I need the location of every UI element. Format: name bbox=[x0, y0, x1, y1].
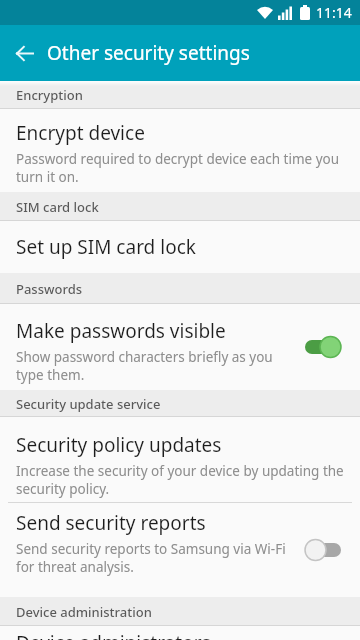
staticText: Set up SIM card lock bbox=[16, 234, 196, 260]
staticText: Make passwords visible bbox=[16, 318, 226, 344]
staticText: Send security reports bbox=[16, 510, 206, 536]
staticText: Security update service bbox=[16, 395, 161, 413]
staticText: Device administrators bbox=[16, 630, 211, 640]
staticText: Passwords bbox=[16, 280, 83, 298]
button[interactable] bbox=[302, 537, 344, 563]
staticText: Encryption bbox=[16, 86, 83, 104]
staticText: Security policy updates bbox=[16, 432, 222, 458]
button[interactable]: Device administrators bbox=[0, 626, 360, 640]
button[interactable] bbox=[302, 334, 344, 360]
button[interactable]: Make passwords visible bbox=[0, 304, 360, 390]
staticText: Password required to decrypt device each… bbox=[16, 150, 340, 186]
button[interactable] bbox=[8, 37, 40, 69]
staticText: SIM card lock bbox=[16, 198, 99, 216]
staticText: Increase the security of your device by … bbox=[16, 462, 344, 498]
staticText: Send security reports to Samsung via Wi-… bbox=[16, 540, 286, 576]
button[interactable]: Security policy updates bbox=[0, 417, 360, 502]
button[interactable]: Send security reports bbox=[0, 503, 360, 597]
staticText: Device administration bbox=[16, 603, 152, 621]
staticText: Show password characters briefly as you … bbox=[16, 348, 273, 384]
staticText: Encrypt device bbox=[16, 120, 145, 146]
staticText: Other security settings bbox=[47, 40, 250, 66]
staticText: 11:14 bbox=[316, 3, 352, 22]
button[interactable]: Set up SIM card lock bbox=[0, 221, 360, 273]
button[interactable]: Encrypt device bbox=[0, 109, 360, 192]
